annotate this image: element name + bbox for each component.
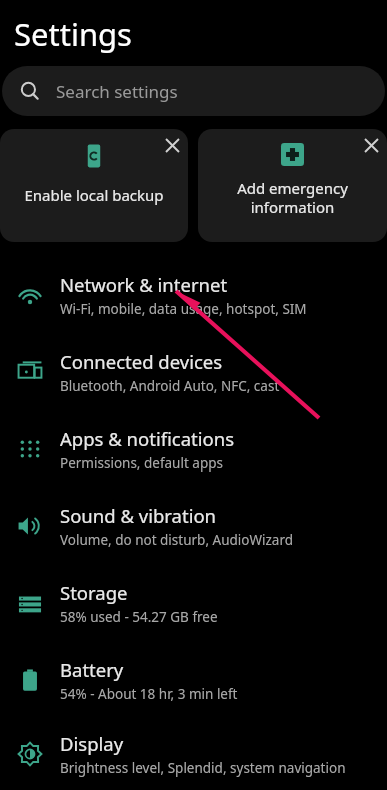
button[interactable]: Dismiss [156, 129, 188, 161]
staticText: Apps & notifications [60, 426, 235, 451]
button[interactable]: Enable local backup [0, 129, 188, 242]
button[interactable]: Connected devices [0, 333, 387, 410]
staticText: Network & internet [60, 272, 228, 297]
staticText: Add emergency information [237, 178, 348, 217]
button[interactable]: Display [0, 718, 387, 790]
staticText: Permissions, default apps [60, 454, 223, 472]
button[interactable]: Storage [0, 564, 387, 641]
staticText: Sound & vibration [60, 503, 217, 528]
staticText: Wi-Fi, mobile, data usage, hotspot, SIM [60, 300, 307, 318]
button[interactable]: Dismiss [355, 129, 387, 161]
staticText: Connected devices [60, 349, 223, 374]
staticText: 58% used - 54.27 GB free [60, 608, 218, 626]
button[interactable]: Battery [0, 641, 387, 718]
staticText: Volume, do not disturb, AudioWizard [60, 531, 294, 549]
staticText: Display [60, 731, 124, 756]
staticText: Storage [60, 580, 128, 605]
staticText: Bluetooth, Android Auto, NFC, cast [60, 377, 280, 395]
staticText: Brightness level, Splendid, system navig… [60, 759, 346, 777]
staticText: Search settings [56, 80, 178, 103]
staticText: 54% - About 18 hr, 3 min left [60, 685, 238, 703]
button[interactable]: Sound & vibration [0, 487, 387, 564]
button[interactable]: Add emergency information [198, 129, 387, 242]
button[interactable]: Apps & notifications [0, 410, 387, 487]
button[interactable]: Network & internet [0, 256, 387, 333]
button[interactable]: Search settings [2, 66, 385, 116]
staticText: Battery [60, 657, 124, 682]
staticText: Enable local backup [24, 185, 164, 205]
staticText: Settings [14, 13, 132, 55]
